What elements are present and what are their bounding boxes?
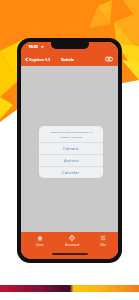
staticText: Registrar S.S bbox=[29, 57, 51, 62]
staticText: 19:22 bbox=[28, 44, 38, 49]
staticText: Reconocer bbox=[65, 243, 80, 247]
staticText: Archivo bbox=[64, 158, 79, 164]
button[interactable]: Más bbox=[88, 235, 118, 247]
staticText: Desde que fuente quieres agregar la imag… bbox=[51, 130, 92, 138]
button[interactable]: Archivo bbox=[39, 154, 103, 166]
button[interactable]: Tomar foto bbox=[105, 55, 113, 63]
staticText: Más bbox=[100, 243, 106, 247]
button[interactable]: Registrar S.S bbox=[24, 52, 51, 66]
button[interactable]: Reconocer bbox=[57, 235, 87, 247]
button[interactable]: Cancelar bbox=[39, 166, 103, 178]
staticText: Cámara bbox=[63, 146, 79, 152]
staticText: Cancelar bbox=[62, 170, 80, 176]
button[interactable]: Inicio bbox=[25, 235, 55, 247]
button[interactable]: Cámara bbox=[39, 142, 103, 154]
staticText: Inicio bbox=[36, 243, 44, 247]
staticText: Galería bbox=[61, 57, 74, 62]
